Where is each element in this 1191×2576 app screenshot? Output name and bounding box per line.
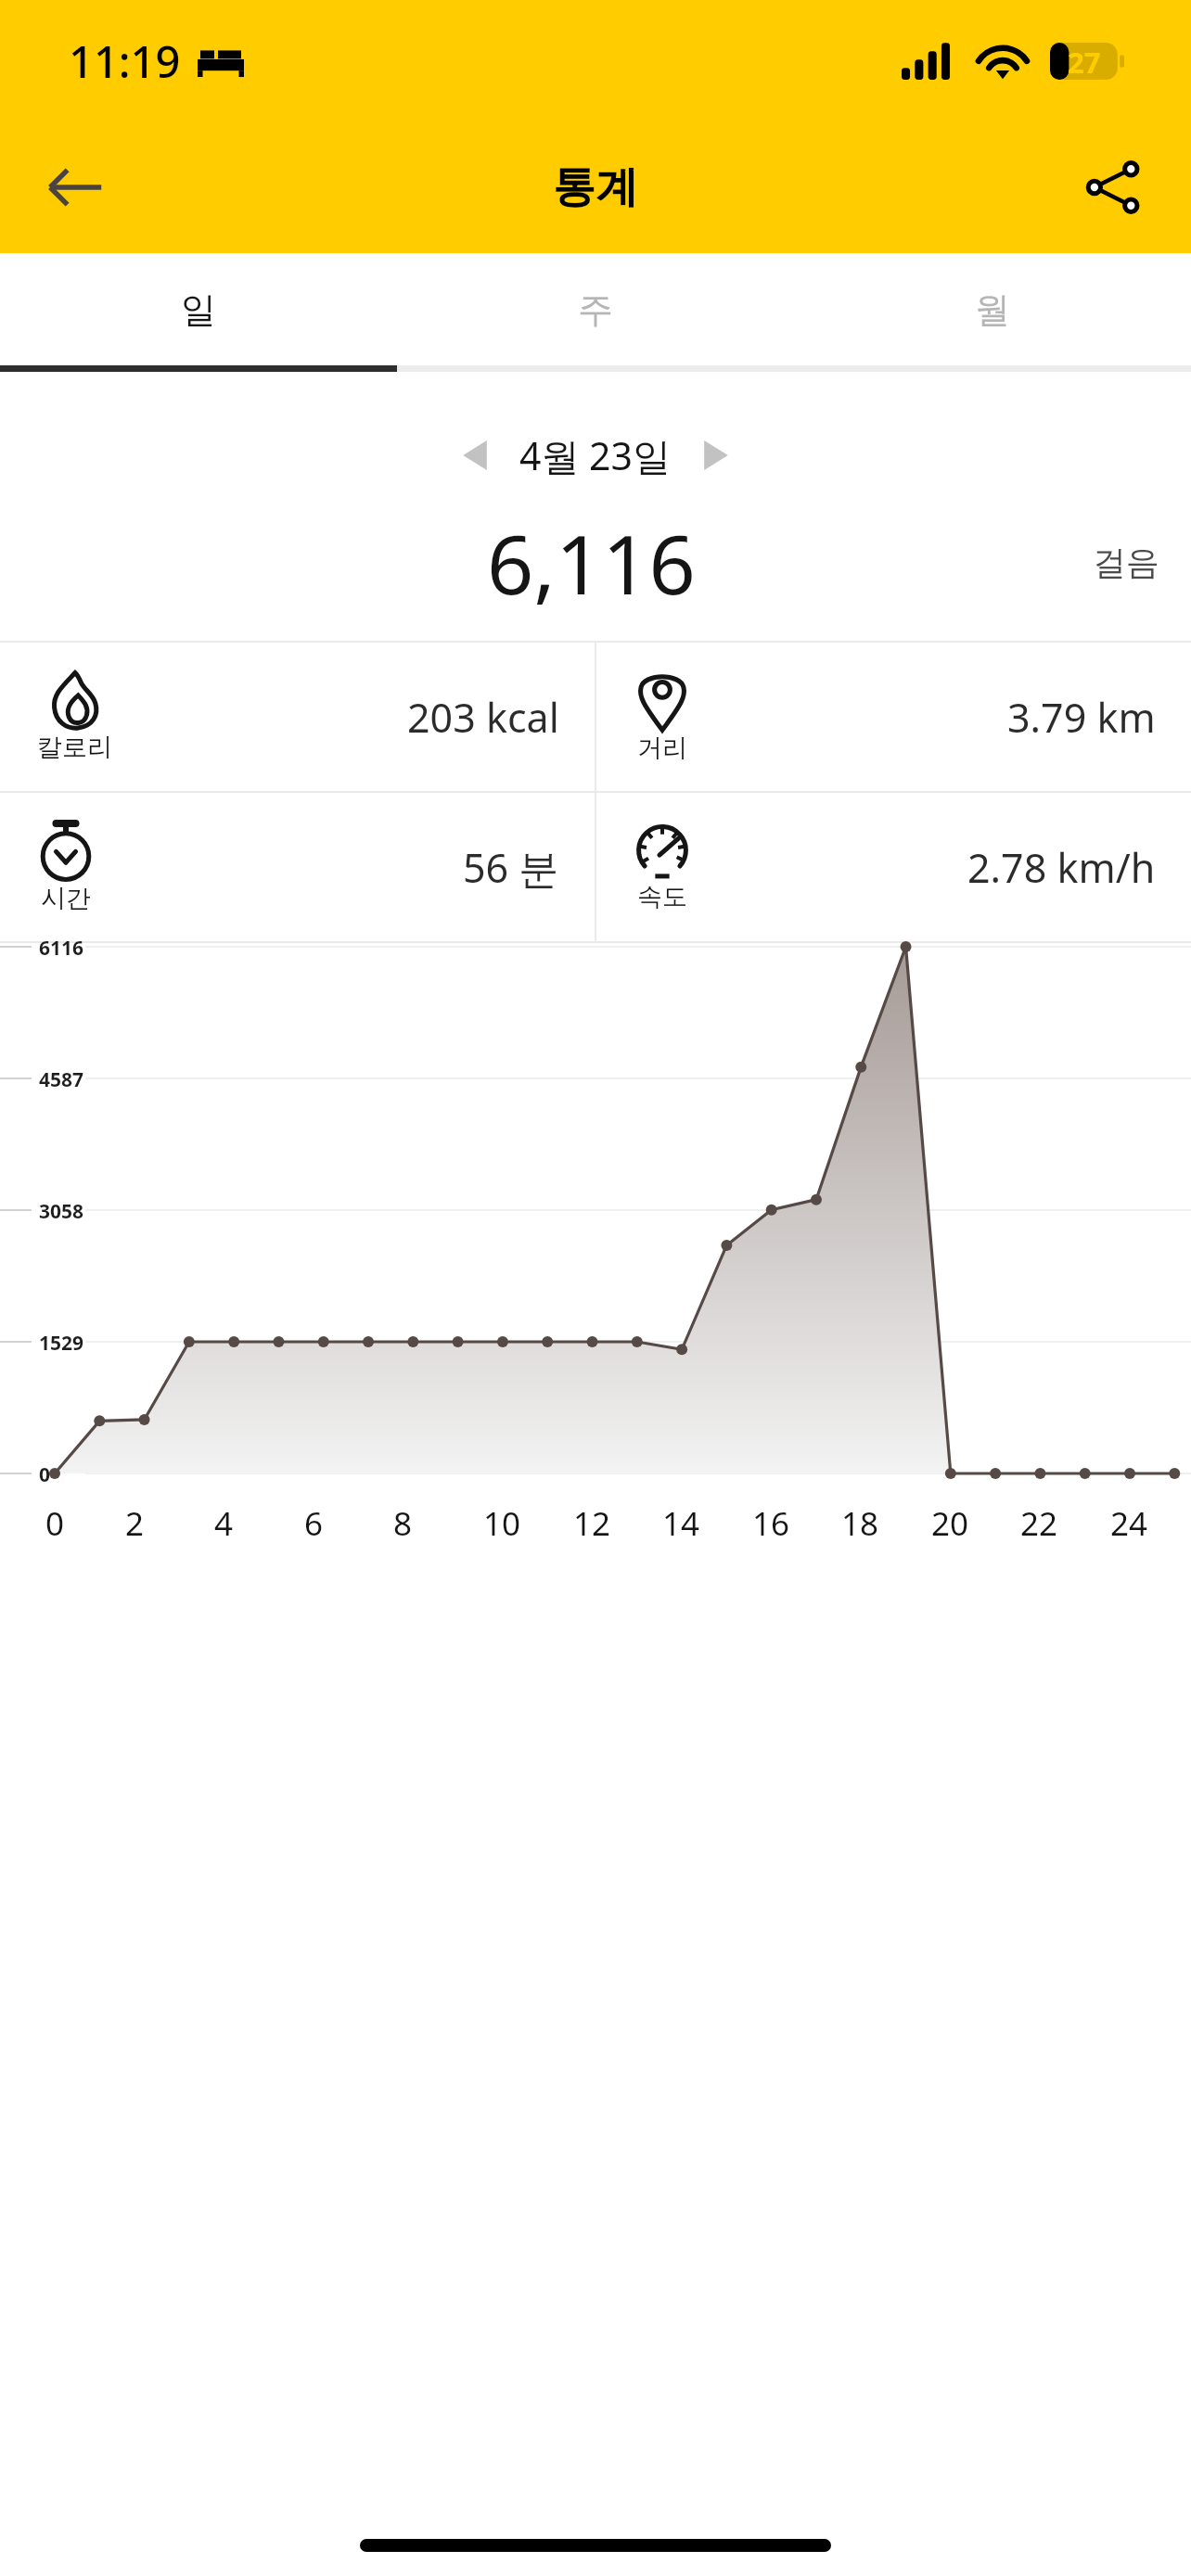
button[interactable]: 시간 bbox=[0, 793, 595, 941]
staticText: 27 bbox=[1068, 43, 1101, 80]
staticText: 통계 bbox=[553, 160, 638, 214]
button[interactable]: Back bbox=[24, 136, 126, 238]
staticText: 3058 bbox=[39, 1198, 84, 1225]
button[interactable]: Previous day bbox=[430, 411, 519, 500]
staticText: 월 bbox=[975, 287, 1010, 332]
staticText: 4587 bbox=[39, 1066, 84, 1093]
staticText: 6 bbox=[304, 1501, 324, 1546]
staticText: 걸음 bbox=[1093, 542, 1159, 583]
staticText: 24 bbox=[1110, 1501, 1148, 1546]
staticText: 0 bbox=[39, 1461, 51, 1488]
staticText: 주 bbox=[578, 287, 613, 332]
button[interactable]: Share bbox=[1061, 136, 1163, 238]
button[interactable]: 일 bbox=[0, 253, 397, 365]
staticText: 16 bbox=[752, 1501, 790, 1546]
button[interactable]: 월 bbox=[794, 253, 1191, 365]
staticText: 1529 bbox=[39, 1330, 84, 1357]
staticText: 11:19 bbox=[69, 32, 181, 91]
staticText: 칼로리 bbox=[37, 732, 112, 763]
staticText: 4월 23일 bbox=[519, 429, 672, 481]
staticText: 2.78 km/h bbox=[967, 840, 1156, 895]
staticText: 4 bbox=[214, 1501, 234, 1546]
staticText: 6116 bbox=[39, 935, 84, 962]
staticText: 시간 bbox=[41, 883, 91, 914]
staticText: 속도 bbox=[637, 881, 687, 912]
button[interactable]: 속도 bbox=[596, 793, 1191, 941]
staticText: 0 bbox=[45, 1501, 65, 1546]
staticText: 거리 bbox=[637, 733, 687, 764]
button[interactable]: Next day bbox=[672, 411, 761, 500]
staticText: 6,116 bbox=[487, 507, 696, 617]
staticText: 20 bbox=[931, 1501, 969, 1546]
staticText: 203 kcal bbox=[407, 690, 559, 745]
staticText: 3.79 km bbox=[1007, 690, 1156, 745]
staticText: 일 bbox=[181, 287, 216, 332]
staticText: 14 bbox=[662, 1501, 700, 1546]
button[interactable]: 칼로리 bbox=[0, 643, 595, 791]
button[interactable]: 주 bbox=[397, 253, 794, 365]
staticText: 18 bbox=[841, 1501, 879, 1546]
staticText: 8 bbox=[393, 1501, 413, 1546]
staticText: 56 분 bbox=[463, 840, 559, 895]
staticText: 10 bbox=[483, 1501, 521, 1546]
staticText: 2 bbox=[125, 1501, 145, 1546]
staticText: 22 bbox=[1020, 1501, 1058, 1546]
button[interactable]: 거리 bbox=[596, 643, 1191, 791]
staticText: 12 bbox=[573, 1501, 611, 1546]
